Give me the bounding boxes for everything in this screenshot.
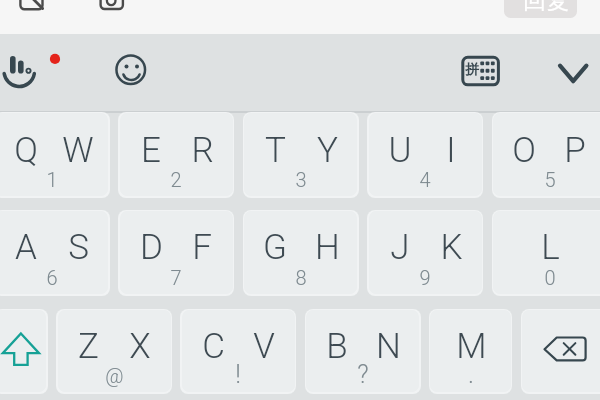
staticText: K: [440, 227, 463, 268]
staticText: 8: [295, 266, 307, 289]
staticText: E: [141, 130, 161, 171]
staticText: F: [192, 227, 212, 268]
staticText: Z: [78, 326, 99, 367]
button[interactable]: Hide keyboard: [552, 55, 594, 91]
staticText: L: [541, 227, 560, 268]
staticText: Y: [317, 130, 338, 171]
button[interactable]: Gallery: [0, 0, 54, 30]
button[interactable]: L 0: [493, 211, 600, 294]
button[interactable]: Switch input method: [456, 50, 504, 92]
staticText: 4: [419, 168, 431, 191]
button[interactable]: T Y 3: [244, 113, 357, 196]
staticText: V: [253, 326, 275, 367]
staticText: A: [15, 227, 37, 268]
staticText: G: [263, 227, 287, 268]
staticText: Q: [14, 130, 38, 171]
staticText: D: [140, 227, 163, 268]
staticText: O: [512, 130, 536, 171]
button[interactable]: B N ?: [306, 310, 419, 392]
button[interactable]: TouchPal menu: [0, 44, 68, 96]
staticText: 5: [544, 168, 556, 191]
button[interactable]: Backspace: [522, 310, 600, 392]
staticText: 6: [46, 266, 58, 289]
staticText: .: [468, 360, 474, 389]
staticText: B: [326, 326, 348, 367]
button[interactable]: [504, 0, 577, 18]
button[interactable]: E R 2: [120, 113, 233, 196]
staticText: 3: [295, 168, 307, 191]
staticText: U: [388, 130, 412, 171]
button[interactable]: Camera: [88, 0, 136, 30]
staticText: C: [202, 326, 225, 367]
button[interactable]: C V !: [182, 310, 295, 392]
button[interactable]: J K 9: [369, 211, 482, 294]
staticText: H: [315, 227, 340, 268]
staticText: 2: [170, 168, 182, 191]
staticText: 0: [544, 266, 556, 289]
staticText: I: [446, 130, 456, 171]
button[interactable]: Q W 1: [0, 113, 108, 196]
staticText: M: [456, 326, 487, 367]
staticText: @: [105, 364, 124, 387]
button[interactable]: M .: [430, 310, 511, 392]
staticText: 7: [170, 266, 182, 289]
button[interactable]: Emoji: [112, 50, 152, 90]
staticText: 回复: [523, 0, 569, 15]
staticText: W: [62, 130, 94, 171]
staticText: 拼: [465, 61, 479, 79]
staticText: N: [376, 326, 401, 367]
staticText: X: [129, 326, 151, 367]
button[interactable]: G H 8: [244, 211, 357, 294]
staticText: S: [68, 227, 89, 268]
staticText: R: [191, 130, 214, 171]
button[interactable]: Z X @: [58, 310, 171, 392]
staticText: J: [390, 227, 410, 268]
staticText: 9: [419, 266, 431, 289]
staticText: T: [265, 130, 286, 171]
staticText: 1: [46, 168, 58, 191]
staticText: ?: [357, 360, 369, 389]
button[interactable]: U I 4: [369, 113, 482, 196]
button[interactable]: O P 5: [493, 113, 600, 196]
staticText: !: [235, 360, 241, 389]
button[interactable]: D F 7: [120, 211, 233, 294]
button[interactable]: Shift: [0, 310, 46, 392]
button[interactable]: A S 6: [0, 211, 108, 294]
staticText: P: [564, 130, 586, 171]
